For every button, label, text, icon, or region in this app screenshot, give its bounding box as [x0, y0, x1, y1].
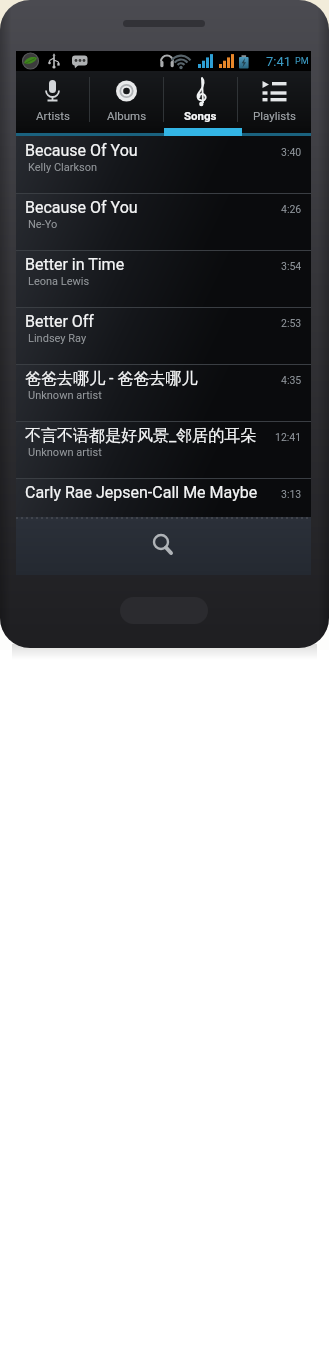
staticText: Because Of You	[25, 198, 138, 217]
staticText: Artists	[36, 109, 70, 122]
staticText: Songs	[184, 109, 217, 122]
staticText: 不言不语都是好风景_邻居的耳朵	[25, 426, 257, 446]
staticText: Albums	[107, 109, 147, 122]
button[interactable]: Playlists	[238, 71, 311, 128]
button[interactable]: Songs	[164, 71, 237, 128]
button[interactable]: Albums	[90, 71, 163, 128]
staticText: Ne-Yo	[28, 218, 58, 231]
staticText: 3:54	[281, 260, 302, 272]
staticText: Kelly Clarkson	[28, 161, 98, 174]
staticText: Leona Lewis	[28, 275, 90, 288]
button[interactable]: Because Of You	[16, 136, 311, 193]
button[interactable]: Better in Time	[16, 250, 311, 307]
staticText: Better Off	[25, 312, 94, 331]
staticText: 3:40	[281, 146, 302, 158]
staticText: Because Of You	[25, 141, 138, 160]
button[interactable]: Carly Rae Jepsen-Call Me Maybe	[16, 478, 311, 535]
staticText: Unknown artist	[28, 446, 102, 459]
button[interactable]: Because Of You	[16, 193, 311, 250]
staticText: 4:26	[281, 203, 302, 215]
button[interactable]: 爸爸去哪儿 - 爸爸去哪儿	[16, 364, 311, 421]
staticText: 7:41	[266, 54, 295, 69]
staticText: 4:35	[281, 374, 302, 386]
button[interactable]: Artists	[16, 71, 89, 128]
staticText: PM	[295, 56, 309, 67]
staticText: Carly Rae Jepsen-Call Me Maybe	[25, 483, 258, 502]
staticText: 3:13	[281, 488, 302, 500]
staticText: 2:53	[281, 317, 302, 329]
staticText: Better in Time	[25, 255, 125, 274]
button[interactable]: 不言不语都是好风景_邻居的耳朵	[16, 421, 311, 478]
staticText: Lindsey Ray	[28, 332, 87, 345]
staticText: Unknown artist	[28, 389, 102, 402]
button[interactable]: Better Off	[16, 307, 311, 364]
staticText: Playlists	[253, 109, 296, 122]
button[interactable]	[16, 517, 311, 575]
staticText: 爸爸去哪儿 - 爸爸去哪儿	[25, 369, 198, 389]
staticText: 12:41	[275, 431, 302, 443]
